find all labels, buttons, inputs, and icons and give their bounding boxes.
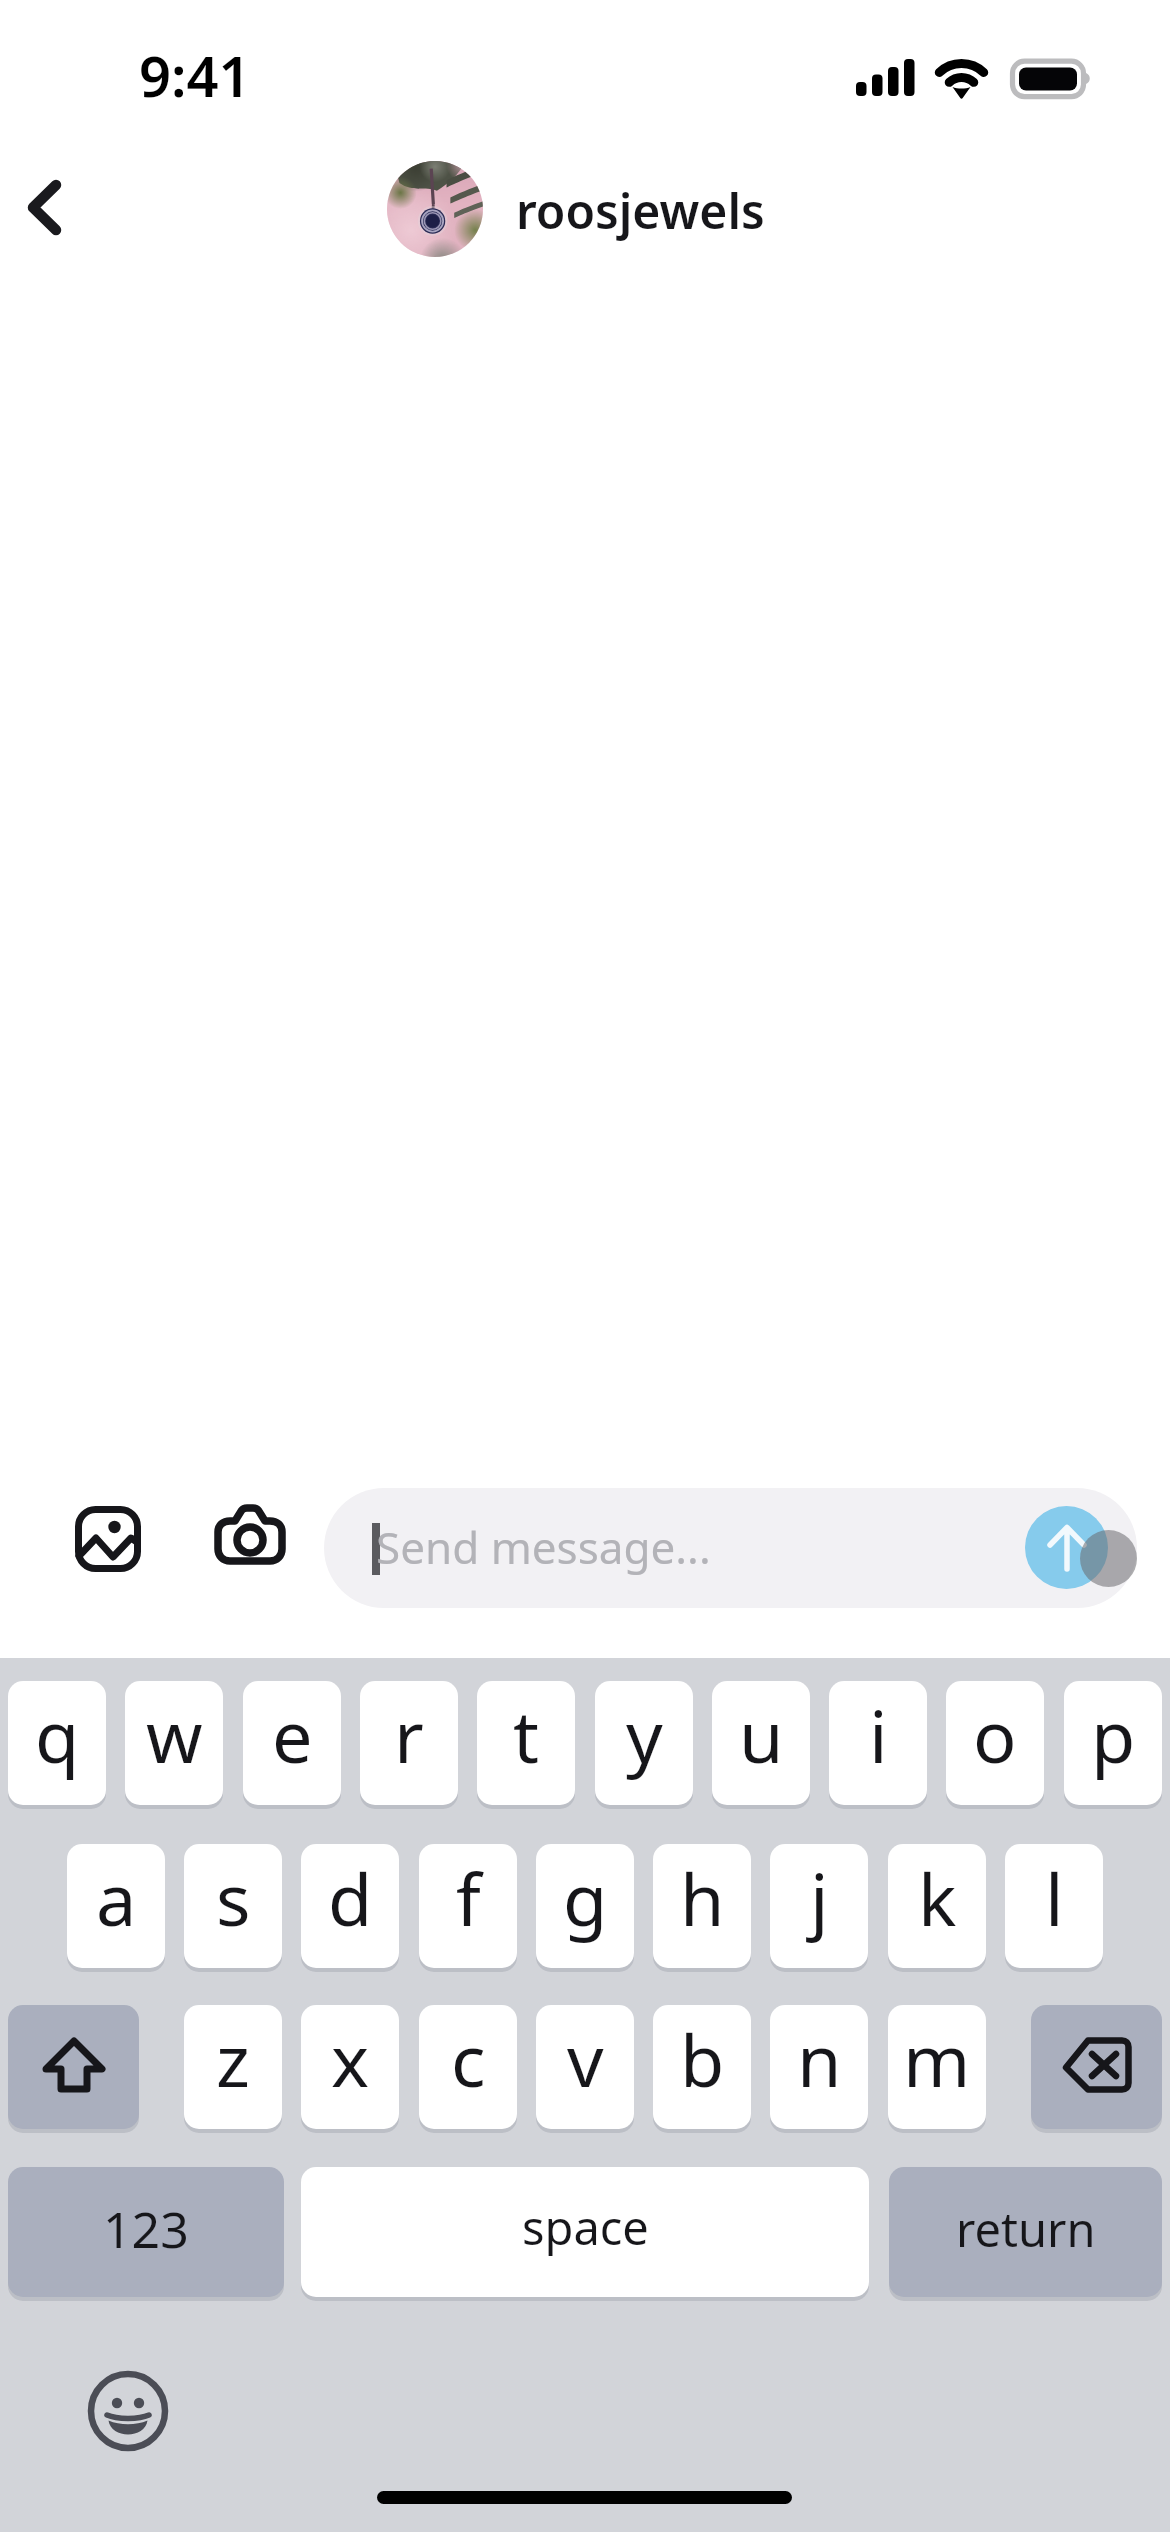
staticText: u: [739, 1686, 784, 1784]
button[interactable]: t: [477, 1681, 575, 1805]
staticText: m: [903, 2010, 971, 2108]
button[interactable]: u: [712, 1681, 810, 1805]
button[interactable]: Backspace: [1031, 2005, 1162, 2129]
button[interactable]: Emoji keyboard: [87, 2370, 167, 2450]
button[interactable]: a: [67, 1844, 165, 1968]
staticText: return: [956, 2197, 1096, 2261]
staticText: t: [513, 1686, 539, 1784]
button[interactable]: f: [419, 1844, 517, 1968]
staticText: y: [626, 1686, 663, 1784]
button[interactable]: return: [889, 2167, 1162, 2297]
staticText: c: [451, 2010, 486, 2108]
staticText: space: [522, 2195, 649, 2259]
button[interactable]: r: [360, 1681, 458, 1805]
staticText: e: [272, 1686, 313, 1784]
button[interactable]: space: [301, 2167, 869, 2297]
staticText: k: [918, 1849, 957, 1947]
staticText: l: [1045, 1849, 1064, 1947]
button[interactable]: x: [301, 2005, 399, 2129]
staticText: s: [216, 1849, 251, 1947]
button[interactable]: Camera: [204, 1493, 296, 1585]
button[interactable]: b: [653, 2005, 751, 2129]
staticText: j: [810, 1849, 829, 1947]
button[interactable]: 123: [8, 2167, 284, 2297]
staticText: a: [96, 1849, 137, 1947]
staticText: h: [680, 1849, 725, 1947]
staticText: i: [869, 1686, 888, 1784]
button[interactable]: Send message: [324, 1488, 1137, 1608]
staticText: x: [331, 2010, 370, 2108]
button[interactable]: i: [829, 1681, 927, 1805]
button[interactable]: m: [888, 2005, 986, 2129]
button[interactable]: Back: [0, 152, 96, 262]
button[interactable]: n: [770, 2005, 868, 2129]
button[interactable]: k: [888, 1844, 986, 1968]
button[interactable]: Shift: [8, 2005, 139, 2129]
button[interactable]: v: [536, 2005, 634, 2129]
button[interactable]: g: [536, 1844, 634, 1968]
button[interactable]: z: [184, 2005, 282, 2129]
staticText: 9:41: [139, 37, 251, 113]
button[interactable]: j: [770, 1844, 868, 1968]
staticText: 123: [103, 2195, 189, 2263]
button[interactable]: y: [595, 1681, 693, 1805]
button[interactable]: s: [184, 1844, 282, 1968]
button[interactable]: roosjewels: [516, 178, 765, 243]
button[interactable]: c: [419, 2005, 517, 2129]
staticText: o: [973, 1686, 1017, 1784]
button[interactable]: d: [301, 1844, 399, 1968]
button[interactable]: Profile photo: [387, 161, 483, 257]
button[interactable]: w: [125, 1681, 223, 1805]
button[interactable]: q: [8, 1681, 106, 1805]
staticText: q: [35, 1686, 80, 1784]
staticText: n: [797, 2010, 842, 2108]
staticText: b: [680, 2010, 725, 2108]
staticText: d: [328, 1849, 373, 1947]
button[interactable]: e: [243, 1681, 341, 1805]
button[interactable]: o: [946, 1681, 1044, 1805]
button[interactable]: Photo library: [62, 1493, 154, 1585]
staticText: w: [146, 1686, 203, 1784]
staticText: z: [216, 2010, 250, 2108]
button[interactable]: Send: [1025, 1506, 1108, 1589]
staticText: Send message...: [376, 1517, 711, 1577]
staticText: p: [1091, 1686, 1136, 1784]
button[interactable]: p: [1064, 1681, 1162, 1805]
staticText: g: [563, 1849, 608, 1947]
staticText: r: [394, 1686, 424, 1784]
button[interactable]: h: [653, 1844, 751, 1968]
staticText: f: [456, 1849, 481, 1947]
staticText: v: [567, 2010, 604, 2108]
button[interactable]: l: [1005, 1844, 1103, 1968]
